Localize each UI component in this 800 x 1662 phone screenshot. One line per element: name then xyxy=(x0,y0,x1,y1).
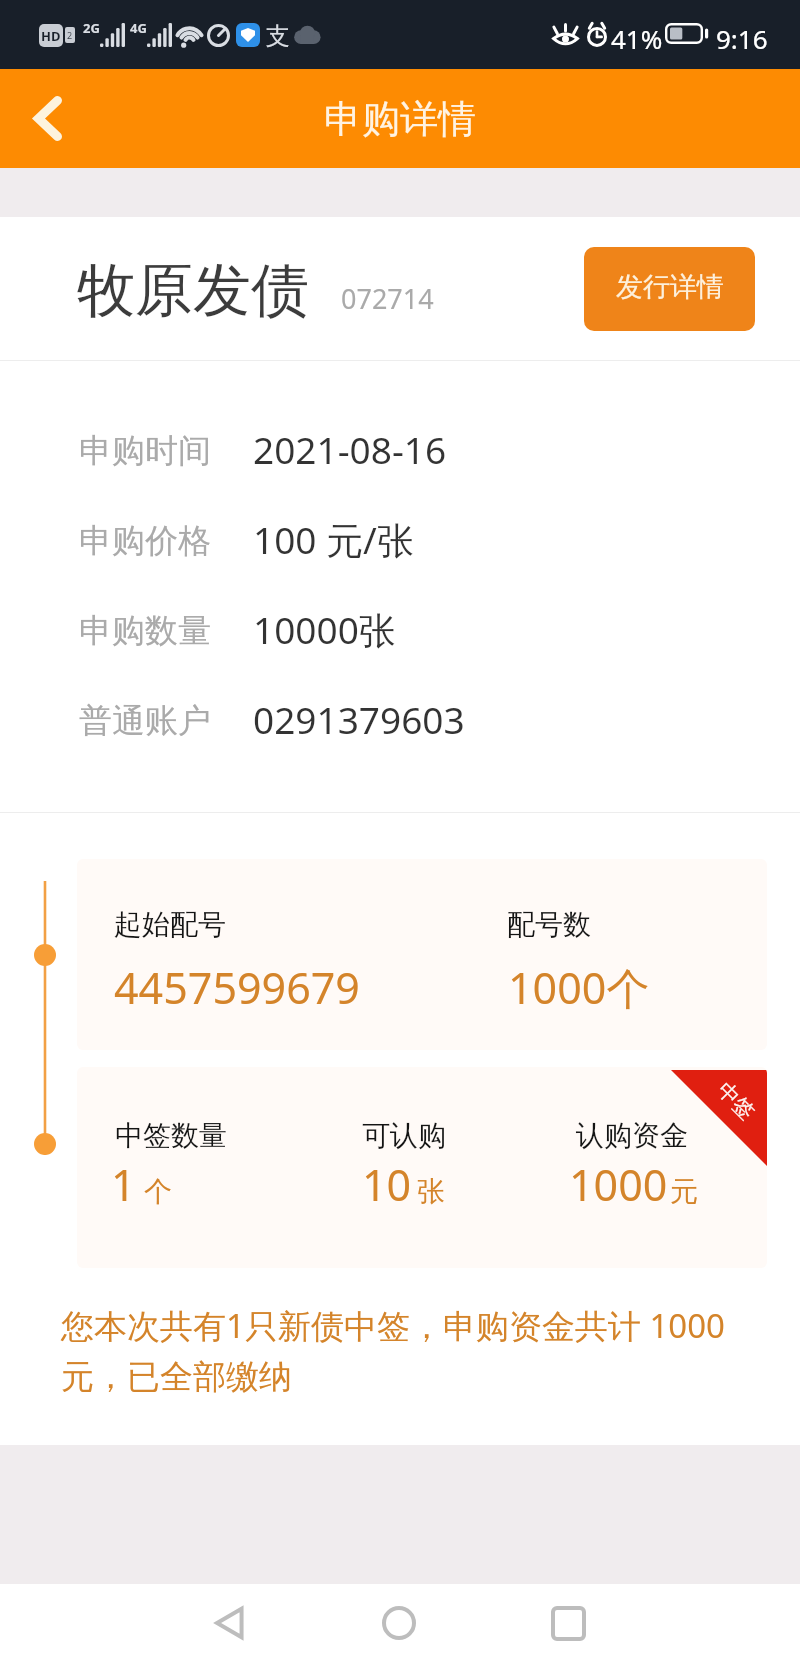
button[interactable]: 申购时间 xyxy=(0,406,800,496)
button[interactable]: 普通账户 xyxy=(0,676,800,766)
staticText: 072714 xyxy=(341,280,434,317)
staticText: 申购数量 xyxy=(79,610,211,652)
button[interactable]: 申购价格 xyxy=(0,496,800,586)
staticText: 元 xyxy=(670,1174,698,1209)
staticText: 配号数 xyxy=(507,907,591,942)
staticText: 认购资金 xyxy=(576,1118,688,1153)
staticText: 1000个 xyxy=(508,958,650,1017)
button[interactable]: Home xyxy=(367,1591,431,1655)
staticText: 个 xyxy=(144,1174,172,1209)
staticText: 您本次共有1只新债中签，申购资金共计 1000 元，已全部缴纳 xyxy=(61,1303,758,1398)
staticText: 41% xyxy=(611,21,663,56)
staticText: 发行详情 xyxy=(616,270,724,304)
staticText: 1 xyxy=(111,1155,136,1214)
staticText: 2G xyxy=(83,19,100,37)
staticText: 起始配号 xyxy=(114,907,226,942)
staticText: 10 xyxy=(362,1155,412,1214)
button[interactable]: 起始配号 xyxy=(77,859,767,1050)
button[interactable]: 中签数量 xyxy=(77,1067,767,1268)
staticText: 普通账户 xyxy=(79,700,211,742)
staticText: 4G xyxy=(130,19,147,37)
staticText: 2021-08-16 xyxy=(253,424,447,474)
staticText: 100 元/张 xyxy=(253,514,414,565)
button[interactable]: Back xyxy=(198,1591,262,1655)
button[interactable]: 发行详情 xyxy=(584,247,755,331)
button[interactable]: Recent apps xyxy=(536,1591,600,1655)
staticText: 可认购 xyxy=(362,1118,446,1153)
button[interactable]: 申购数量 xyxy=(0,586,800,676)
staticText: 申购时间 xyxy=(79,430,211,472)
staticText: HD xyxy=(41,27,61,45)
staticText: 申购详情 xyxy=(324,95,476,143)
staticText: 9:16 xyxy=(716,21,768,56)
button[interactable]: Back xyxy=(0,69,100,168)
staticText: 4457599679 xyxy=(114,958,360,1017)
staticText: 10000张 xyxy=(253,604,396,655)
staticText: 2 xyxy=(67,29,73,41)
staticText: 0291379603 xyxy=(253,694,465,744)
staticText: 支 xyxy=(266,21,290,51)
staticText: 张 xyxy=(417,1174,445,1209)
staticText: 中签 xyxy=(712,1077,760,1125)
staticText: 牧原发债 xyxy=(77,254,309,327)
staticText: 中签数量 xyxy=(115,1118,227,1153)
staticText: 1000 xyxy=(569,1155,668,1214)
staticText: 申购价格 xyxy=(79,520,211,562)
